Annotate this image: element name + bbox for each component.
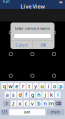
button[interactable]: Camera <box>22 65 43 86</box>
staticText: g <box>31 91 34 98</box>
staticText: r <box>22 83 24 90</box>
staticText: f <box>25 91 27 98</box>
button[interactable]: h <box>36 92 41 98</box>
staticText: q <box>3 83 6 90</box>
button[interactable]: Camera <box>0 43 22 65</box>
button[interactable]: l <box>55 92 60 98</box>
staticText: ⇧ <box>5 101 8 106</box>
staticText: j <box>45 91 46 98</box>
button[interactable]: Cancel <box>10 41 32 49</box>
staticText: ◗◗▮ <box>59 0 62 3</box>
staticText: o <box>53 83 56 90</box>
button[interactable]: Camera <box>22 43 43 65</box>
staticText: s <box>12 91 15 98</box>
staticText: 9:41 <box>3 0 10 4</box>
staticText: n <box>44 100 47 107</box>
button[interactable]: d <box>17 92 22 98</box>
button[interactable]: Camera <box>0 65 22 86</box>
staticText: u <box>40 83 43 90</box>
button[interactable]: space <box>9 109 45 115</box>
staticText: b <box>37 100 40 107</box>
button[interactable]: e <box>14 83 19 89</box>
button[interactable]: Camera <box>43 22 65 43</box>
staticText: t <box>28 83 30 90</box>
button[interactable]: n <box>42 100 48 107</box>
button[interactable]: Camera <box>43 65 65 86</box>
staticText: m <box>49 100 54 107</box>
button[interactable]: v <box>30 100 35 107</box>
button[interactable]: OK <box>33 41 54 49</box>
staticText: 123 <box>1 110 7 114</box>
staticText: y <box>34 83 37 90</box>
staticText: x <box>18 100 21 107</box>
staticText: OK <box>41 42 47 48</box>
button[interactable]: g <box>30 92 35 98</box>
button[interactable]: k <box>49 92 54 98</box>
button[interactable]: u <box>39 83 45 89</box>
staticText: Live View <box>20 3 44 10</box>
button[interactable]: b <box>36 100 41 107</box>
button[interactable]: Camera <box>0 22 22 43</box>
button[interactable]: ⇧ <box>3 100 10 107</box>
staticText: l <box>57 91 58 98</box>
staticText: Cancel <box>15 42 27 48</box>
button[interactable]: return <box>46 109 64 115</box>
staticText: k <box>50 91 53 98</box>
staticText: a <box>6 91 9 98</box>
staticText: e <box>15 83 18 90</box>
button[interactable]: f <box>24 92 29 98</box>
staticText: Enter camera name <box>15 25 50 31</box>
staticText: space <box>24 110 31 114</box>
button[interactable]: j <box>42 92 48 98</box>
staticText: ⌫ <box>55 101 61 106</box>
staticText: w <box>8 83 12 90</box>
button[interactable]: s <box>11 92 16 98</box>
staticText: c <box>25 100 28 107</box>
button[interactable]: Camera <box>22 22 43 43</box>
button[interactable]: Camera <box>43 43 65 65</box>
button[interactable]: w <box>8 83 13 89</box>
button[interactable]: 123 <box>1 109 8 115</box>
button[interactable]: i <box>46 83 51 89</box>
staticText: z <box>12 100 15 107</box>
button[interactable]: ⌫ <box>55 100 62 107</box>
button[interactable]: c <box>24 100 29 107</box>
staticText: i <box>48 83 49 90</box>
staticText: v <box>31 100 34 107</box>
button[interactable]: z <box>11 100 16 107</box>
staticText: h <box>37 91 40 98</box>
button[interactable]: o <box>52 83 57 89</box>
staticText: p <box>59 83 62 90</box>
staticText: d <box>18 91 21 98</box>
button[interactable]: t <box>27 83 32 89</box>
button[interactable]: a <box>5 92 10 98</box>
button[interactable]: m <box>49 100 54 107</box>
button[interactable]: p <box>58 83 63 89</box>
button[interactable]: x <box>17 100 23 107</box>
button[interactable]: r <box>20 83 26 89</box>
button[interactable]: y <box>33 83 38 89</box>
button[interactable]: q <box>1 83 7 89</box>
staticText: return <box>51 110 60 114</box>
